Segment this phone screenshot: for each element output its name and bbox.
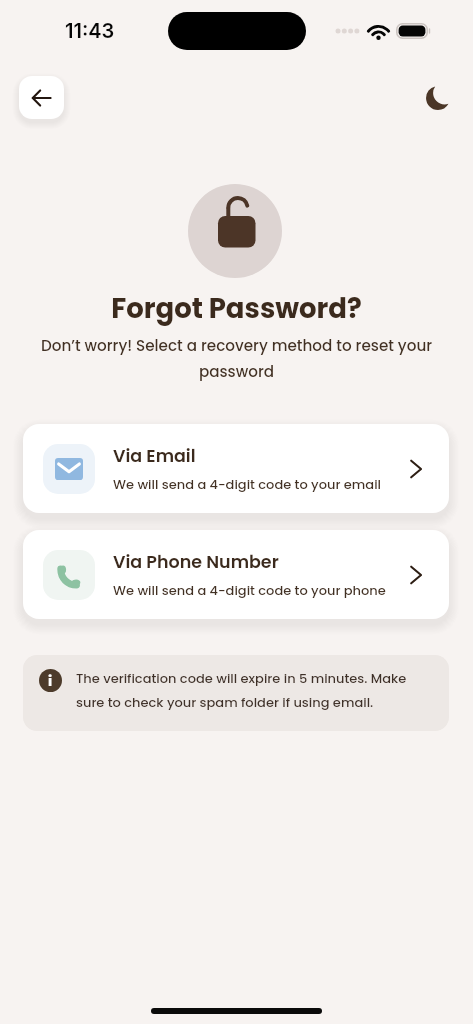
button[interactable]: Back — [19, 76, 64, 119]
button[interactable]: Toggle dark mode — [418, 78, 458, 118]
button[interactable]: Via Phone Number — [23, 530, 449, 619]
staticText: We will send a 4-digit code to your phon… — [113, 581, 386, 599]
staticText: Via Phone Number — [113, 550, 279, 575]
staticText: Don’t worry! Select a recovery method to… — [34, 335, 439, 382]
staticText: i — [48, 671, 53, 691]
staticText: Via Email — [113, 444, 196, 469]
staticText: We will send a 4-digit code to your emai… — [113, 475, 381, 493]
staticText: 11:43 — [65, 19, 115, 43]
button[interactable]: Via Email — [23, 424, 449, 513]
staticText: Forgot Password? — [0, 289, 473, 327]
staticText: The verification code will expire in 5 m… — [76, 669, 427, 712]
